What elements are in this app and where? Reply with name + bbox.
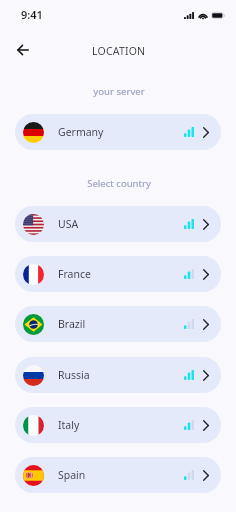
other: Open [203,219,209,230]
button[interactable]: Russia [15,357,221,393]
button[interactable]: Spain [15,457,221,493]
staticText: 9:41 [21,7,43,22]
staticText: USA [58,217,79,231]
button[interactable]: Italy [15,407,221,443]
staticText: your server [1,85,236,98]
other: Open [203,319,209,330]
staticText: Brazil [58,317,86,331]
other: Open [203,370,209,381]
button[interactable]: Back [9,36,37,64]
staticText: Spain [58,468,86,482]
staticText: Russia [58,368,90,382]
button[interactable]: France [15,256,221,292]
staticText: Italy [58,418,80,432]
staticText: Germany [58,125,104,139]
other: Open [203,269,209,280]
button[interactable]: Germany [15,114,221,150]
staticText: Select country [1,177,236,190]
other: Open [203,127,209,138]
button[interactable]: USA [15,206,221,242]
staticText: LOCATION [92,44,146,58]
other: Open [203,470,209,481]
other: Open [203,420,209,431]
button[interactable]: Brazil [15,306,221,342]
staticText: France [58,267,91,281]
